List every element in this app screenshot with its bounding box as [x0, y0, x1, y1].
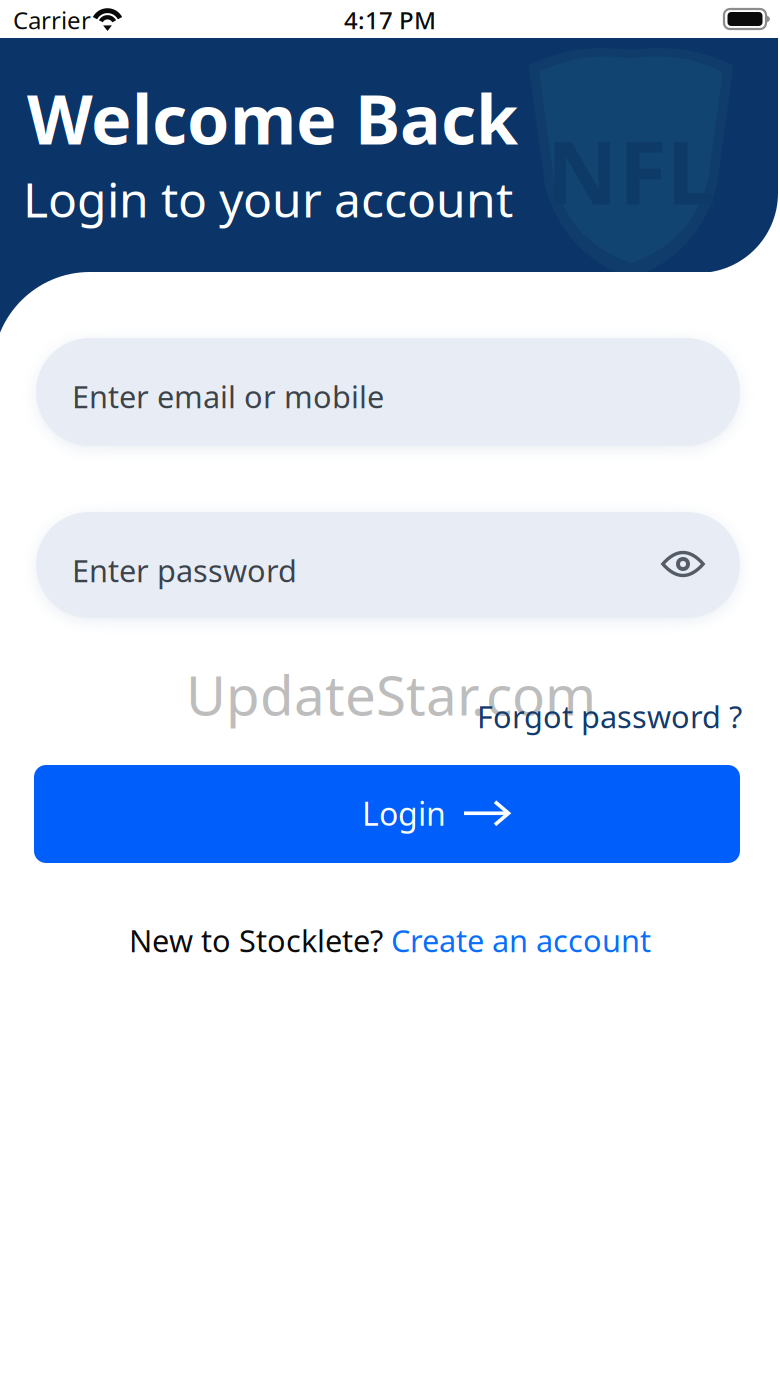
staticText: NFL [546, 112, 715, 229]
button[interactable]: Enter password [36, 512, 740, 618]
button[interactable]: Create an account [391, 920, 651, 961]
staticText: Login [362, 792, 446, 834]
staticText: Create an account [391, 920, 651, 961]
staticText: Forgot password ? [477, 696, 742, 737]
button[interactable]: Forgot password ? [477, 696, 742, 737]
staticText: Login to your account [23, 167, 513, 231]
button[interactable]: Enter email or mobile [36, 338, 740, 446]
staticText: Carrier [13, 4, 91, 36]
button[interactable]: Login [34, 765, 740, 863]
staticText: 4:17 PM [344, 4, 436, 36]
staticText: New to Stocklete? [129, 920, 391, 961]
staticText: UpdateStar.com [186, 658, 596, 731]
staticText: Welcome Back [27, 73, 518, 163]
staticText: Enter password [72, 550, 297, 591]
staticText: Enter email or mobile [72, 376, 384, 417]
